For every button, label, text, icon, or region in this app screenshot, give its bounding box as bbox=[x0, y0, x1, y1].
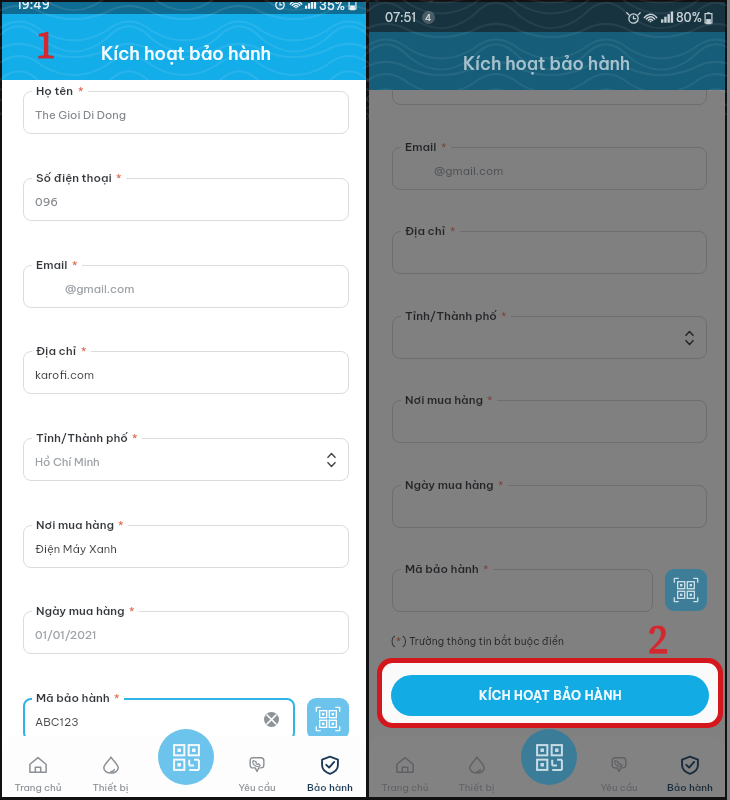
staticText: Kích hoạt bảo hành bbox=[101, 42, 271, 65]
button[interactable] bbox=[392, 316, 707, 359]
staticText: Bảo hành bbox=[667, 781, 713, 793]
button[interactable]: Quét mã QR bbox=[665, 569, 707, 611]
staticText: Ngày mua hàng bbox=[405, 477, 494, 492]
staticText: * bbox=[396, 635, 402, 648]
button[interactable]: Bảo hành bbox=[293, 736, 366, 797]
button[interactable]: Quét mã QR bbox=[307, 698, 349, 740]
staticText: @gmail.com bbox=[65, 282, 135, 296]
staticText: * bbox=[441, 140, 447, 154]
staticText: * bbox=[450, 224, 456, 238]
staticText: Nơi mua hàng bbox=[36, 517, 114, 532]
button[interactable]: Xoá nội dung bbox=[264, 712, 279, 727]
button[interactable] bbox=[23, 525, 349, 568]
button[interactable] bbox=[392, 147, 707, 190]
button[interactable]: Yêu cầu bbox=[220, 736, 293, 797]
staticText: Điện Máy Xanh bbox=[35, 542, 117, 556]
staticText: * bbox=[81, 344, 87, 358]
button[interactable]: KÍCH HOẠT BẢO HÀNH bbox=[391, 675, 709, 716]
staticText: Trang chủ bbox=[381, 781, 429, 793]
staticText: 1 bbox=[36, 18, 56, 71]
button[interactable] bbox=[392, 90, 707, 105]
button[interactable]: Quét mã QR bbox=[521, 729, 577, 785]
staticText: 4 bbox=[425, 12, 432, 23]
staticText: * bbox=[132, 431, 138, 445]
staticText: * bbox=[483, 562, 489, 576]
staticText: * bbox=[501, 309, 507, 323]
button[interactable]: Thiết bị bbox=[74, 736, 147, 797]
staticText: Yêu cầu bbox=[238, 781, 276, 793]
button[interactable] bbox=[392, 569, 653, 612]
staticText: Mã bảo hành bbox=[405, 561, 479, 576]
staticText: Email bbox=[405, 139, 437, 154]
staticText: Bảo hành bbox=[307, 781, 353, 793]
staticText: Thiết bị bbox=[458, 781, 495, 793]
staticText: 01/01/2021 bbox=[35, 628, 97, 642]
staticText: Mã bảo hành bbox=[36, 690, 110, 705]
staticText: Trang chủ bbox=[14, 781, 62, 793]
staticText: @gmail.com bbox=[434, 164, 504, 178]
button[interactable]: Trang chủ bbox=[369, 736, 441, 797]
staticText: * bbox=[118, 518, 124, 532]
staticText: Ngày mua hàng bbox=[36, 603, 125, 618]
button[interactable] bbox=[392, 400, 707, 443]
button[interactable] bbox=[23, 611, 349, 654]
staticText: ) Trường thông tin bắt buộc điền bbox=[402, 635, 564, 648]
button[interactable] bbox=[23, 351, 349, 394]
staticText: The Gioi Di Dong bbox=[35, 108, 126, 122]
button[interactable] bbox=[392, 231, 707, 274]
staticText: Yêu cầu bbox=[600, 781, 638, 793]
staticText: * bbox=[114, 691, 120, 705]
staticText: 35% bbox=[319, 2, 346, 10]
button[interactable] bbox=[23, 178, 349, 221]
staticText: KÍCH HOẠT BẢO HÀNH bbox=[479, 688, 622, 703]
button[interactable]: Thiết bị bbox=[441, 736, 512, 797]
staticText: Hồ Chí Minh bbox=[35, 455, 100, 469]
staticText: * bbox=[72, 258, 78, 272]
staticText: Số điện thoại bbox=[36, 170, 112, 185]
staticText: Địa chỉ bbox=[36, 343, 77, 358]
button[interactable]: Quét mã QR bbox=[158, 729, 214, 785]
staticText: * bbox=[487, 393, 493, 407]
staticText: Email bbox=[36, 257, 68, 272]
staticText: Thiết bị bbox=[92, 781, 129, 793]
staticText: Họ tên bbox=[36, 83, 74, 98]
staticText: karofi.com bbox=[35, 368, 95, 382]
staticText: Tỉnh/Thành phố bbox=[36, 430, 128, 445]
staticText: 80% bbox=[676, 10, 702, 25]
button[interactable]: Bảo hành bbox=[654, 736, 725, 797]
staticText: 07:51 bbox=[385, 10, 417, 25]
staticText: Nơi mua hàng bbox=[405, 392, 483, 407]
button[interactable] bbox=[23, 438, 349, 481]
button[interactable] bbox=[23, 91, 349, 134]
button[interactable] bbox=[23, 265, 349, 308]
staticText: Địa chỉ bbox=[405, 223, 446, 238]
staticText: * bbox=[498, 478, 504, 492]
staticText: Kích hoạt bảo hành bbox=[463, 52, 631, 74]
staticText: 096 bbox=[35, 195, 59, 209]
button[interactable]: Trang chủ bbox=[2, 736, 74, 797]
staticText: * bbox=[129, 604, 135, 618]
staticText: ( bbox=[391, 635, 396, 648]
button[interactable]: Yêu cầu bbox=[583, 736, 654, 797]
staticText: * bbox=[78, 84, 84, 98]
button[interactable] bbox=[23, 698, 295, 741]
staticText: ABC123 bbox=[35, 715, 79, 729]
staticText: * bbox=[116, 171, 122, 185]
staticText: Tỉnh/Thành phố bbox=[405, 308, 497, 323]
staticText: 19:49 bbox=[17, 2, 50, 9]
staticText: 2 bbox=[648, 612, 668, 667]
button[interactable] bbox=[392, 485, 707, 528]
